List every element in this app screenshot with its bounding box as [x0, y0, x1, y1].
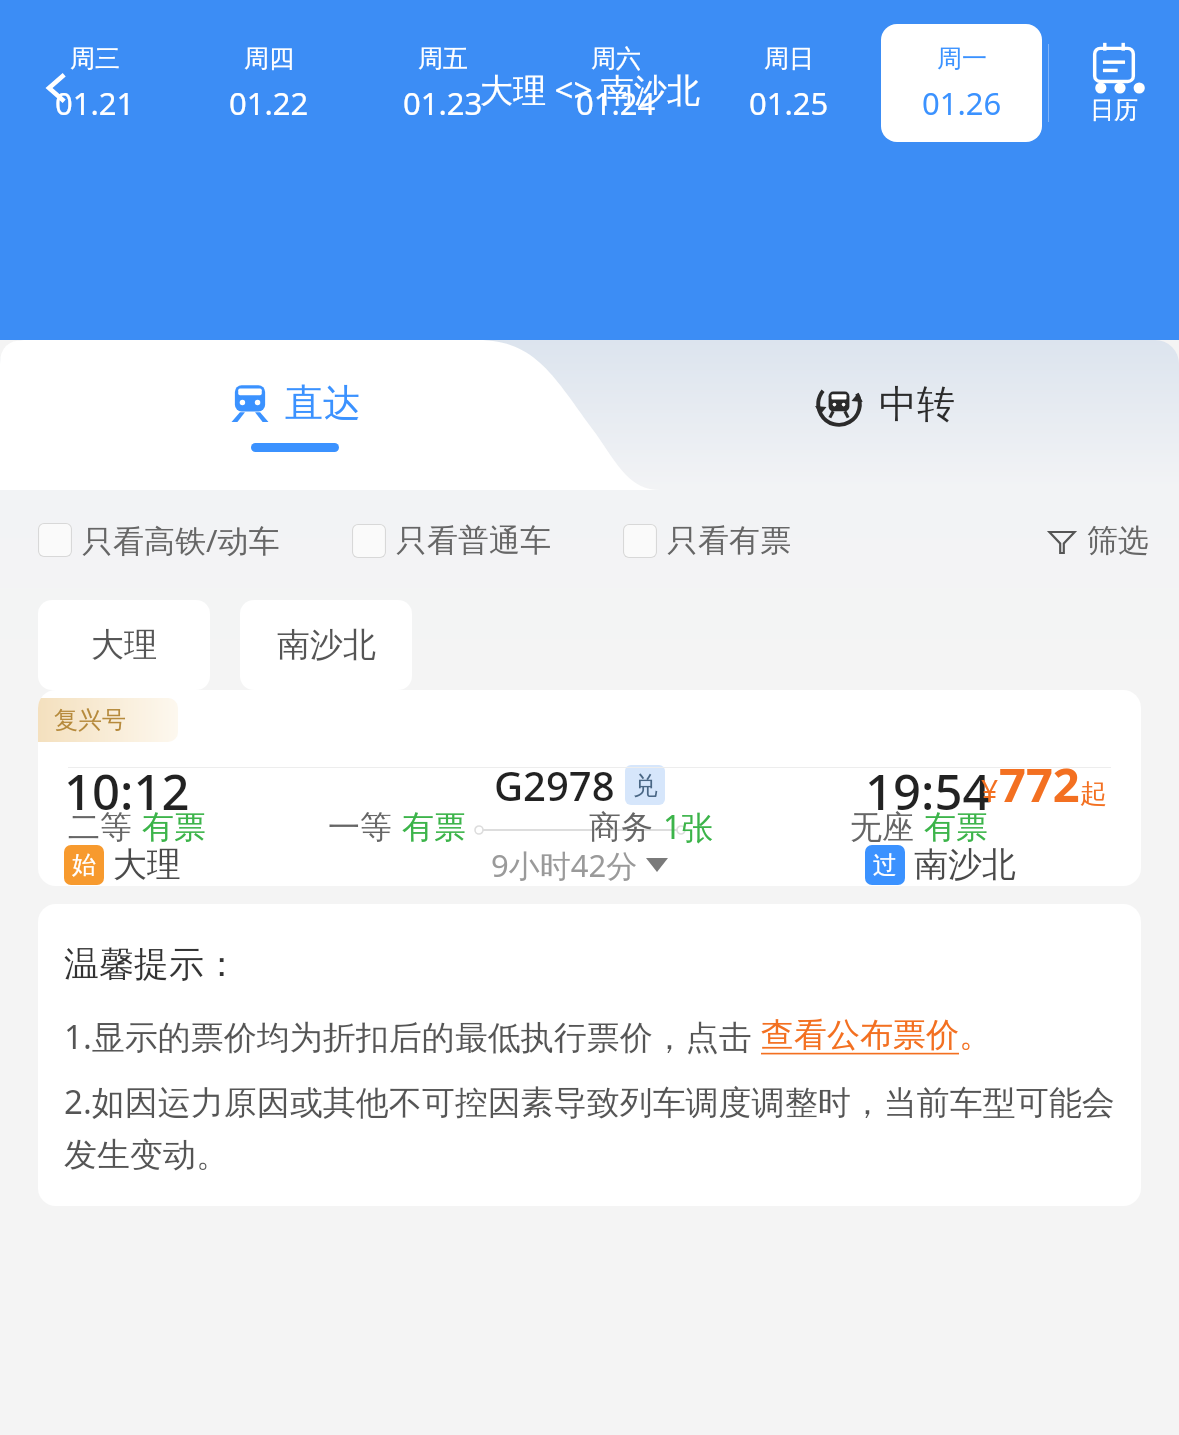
staticText: 无座: [850, 807, 914, 847]
button[interactable]: 只看普通车: [352, 521, 551, 560]
button[interactable]: 周四: [188, 24, 350, 142]
staticText: 只看普通车: [396, 521, 551, 560]
button[interactable]: 筛选: [1047, 521, 1149, 560]
staticText: 1张: [663, 805, 714, 849]
staticText: 直达: [285, 379, 361, 427]
button[interactable]: 周三: [14, 24, 176, 142]
staticText: 01.25: [749, 82, 829, 124]
staticText: 周三: [70, 43, 120, 74]
staticText: 中转: [879, 380, 955, 428]
button[interactable]: 南沙北: [240, 600, 412, 690]
staticText: 过: [873, 850, 897, 880]
staticText: 01.26: [922, 82, 1002, 124]
staticText: 19:54: [865, 758, 991, 825]
staticText: 9小时42分: [491, 844, 638, 886]
button[interactable]: 复兴号: [38, 690, 1141, 886]
staticText: 772: [999, 752, 1080, 816]
staticText: ¥: [981, 770, 999, 811]
staticText: 大理 <> 南沙北: [480, 67, 700, 112]
staticText: 大理: [91, 624, 157, 666]
staticText: 01.21: [55, 82, 135, 124]
staticText: 商务: [589, 807, 653, 847]
staticText: 筛选: [1087, 521, 1149, 560]
staticText: 日历: [1090, 95, 1138, 125]
staticText: 周日: [764, 43, 814, 74]
staticText: 10:12: [64, 758, 190, 825]
staticText: 始: [72, 850, 96, 880]
staticText: 起: [1080, 777, 1107, 811]
staticText: 二等: [68, 807, 132, 847]
staticText: 01.24: [576, 82, 656, 124]
button[interactable]: 周五: [362, 24, 523, 142]
button[interactable]: 周日: [708, 24, 869, 142]
staticText: 有票: [142, 807, 206, 847]
staticText: G2978: [494, 758, 615, 812]
button[interactable]: Calendar: [1049, 23, 1179, 143]
staticText: 复兴号: [54, 705, 126, 735]
button[interactable]: Back: [22, 53, 92, 123]
button[interactable]: 周六: [535, 24, 696, 142]
staticText: 只看高铁/动车: [82, 519, 280, 561]
button[interactable]: 查看公布票价: [761, 1014, 959, 1056]
button[interactable]: 直达: [0, 340, 589, 490]
button[interactable]: 中转: [589, 340, 1179, 490]
staticText: 温馨提示：: [64, 942, 239, 986]
button[interactable]: 周一: [881, 24, 1042, 142]
staticText: 兑: [633, 770, 658, 801]
staticText: 有票: [924, 807, 988, 847]
button[interactable]: 只看高铁/动车: [38, 519, 280, 561]
staticText: 周五: [418, 43, 468, 74]
staticText: 周一: [937, 43, 987, 74]
staticText: 只看有票: [667, 521, 791, 560]
staticText: 。: [959, 1014, 992, 1056]
staticText: 01.23: [403, 82, 483, 124]
staticText: 01.22: [229, 82, 309, 124]
button[interactable]: More options: [1083, 51, 1157, 125]
staticText: 周六: [591, 43, 641, 74]
staticText: 2.如因运力原因或其他不可控因素导致列车调度调整时，当前车型可能会发生变动。: [64, 1079, 1115, 1176]
staticText: 有票: [402, 807, 466, 847]
staticText: 南沙北: [914, 843, 1016, 886]
staticText: 周四: [244, 43, 294, 74]
staticText: 大理: [113, 843, 181, 886]
staticText: 1.显示的票价均为折扣后的最低执行票价，点击: [64, 1014, 761, 1059]
button[interactable]: 只看有票: [623, 521, 791, 560]
staticText: 南沙北: [277, 624, 376, 666]
staticText: 一等: [328, 807, 392, 847]
button[interactable]: 大理: [38, 600, 210, 690]
